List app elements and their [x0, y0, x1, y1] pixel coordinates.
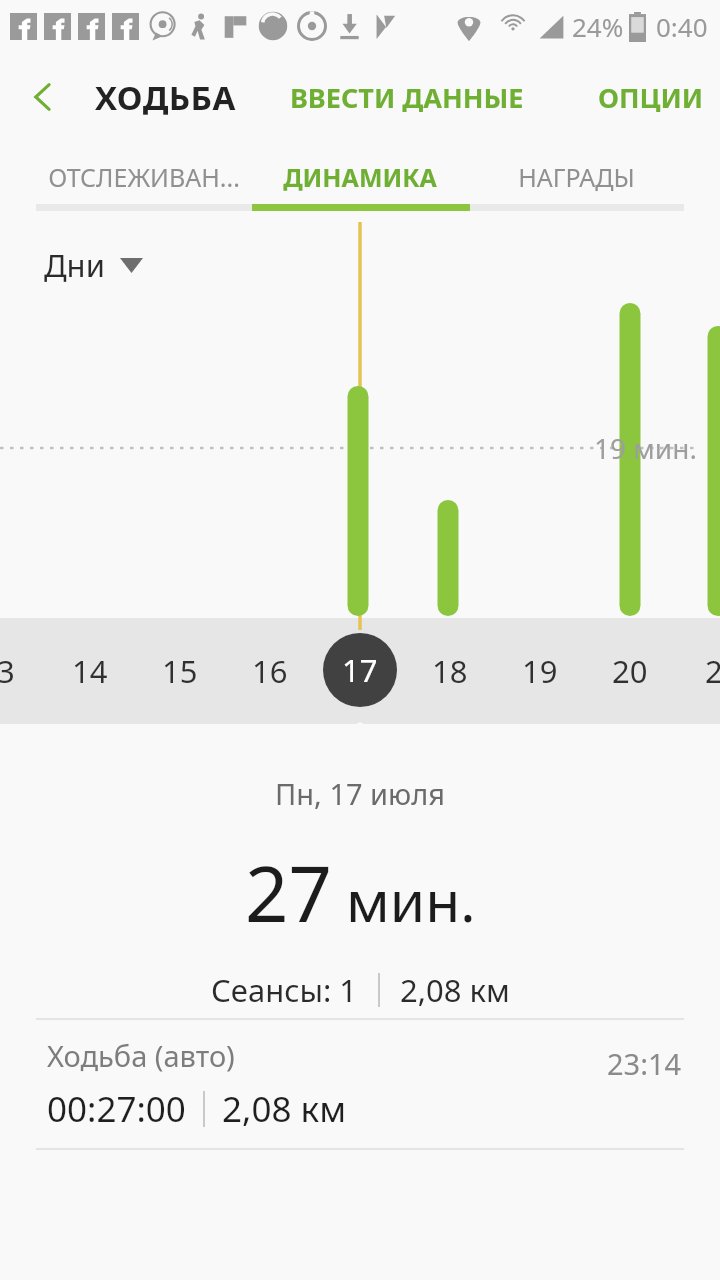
staticText: 23:14	[607, 1044, 682, 1083]
staticText: 27	[245, 841, 332, 945]
staticText: ОТСЛЕЖИВАН...	[48, 160, 240, 194]
staticText: 19 мин.	[594, 429, 697, 467]
button[interactable]: ДИНАМИКА	[252, 142, 468, 212]
button[interactable]: 16	[225, 626, 315, 716]
button[interactable]: 15	[135, 626, 225, 716]
staticText: ОПЦИИ	[598, 79, 704, 116]
button[interactable]: Back	[16, 70, 70, 124]
staticText: Пн, 17 июля	[275, 774, 446, 813]
staticText: Ходьба (авто)	[47, 1036, 235, 1075]
button[interactable]: 14	[45, 626, 135, 716]
staticText: 0:40	[656, 9, 708, 44]
staticText: Дни	[44, 244, 105, 286]
staticText: 20	[612, 650, 648, 692]
staticText: ХОДЬБА	[95, 75, 236, 120]
button[interactable]: Ходьба (авто)	[0, 1020, 720, 1148]
button[interactable]: 19	[495, 626, 585, 716]
staticText: НАГРАДЫ	[518, 160, 635, 194]
button[interactable]: 20	[585, 626, 675, 716]
staticText: мин.	[346, 861, 476, 939]
staticText: 19	[522, 650, 558, 692]
staticText: 2	[705, 650, 720, 692]
button[interactable]: ОПЦИИ	[592, 67, 710, 128]
staticText: 15	[162, 650, 198, 692]
staticText: ДИНАМИКА	[283, 160, 437, 194]
button[interactable]: 3	[0, 626, 51, 716]
staticText: 17	[342, 649, 378, 691]
staticText: 3	[0, 650, 15, 692]
button[interactable]: 18	[405, 626, 495, 716]
button[interactable]: ОТСЛЕЖИВАН...	[36, 142, 252, 212]
staticText: 16	[252, 650, 288, 692]
button[interactable]: 17	[323, 633, 397, 707]
button[interactable]: НАГРАДЫ	[468, 142, 684, 212]
staticText: 14	[72, 650, 108, 692]
button[interactable]: Дни	[44, 244, 143, 286]
staticText: 2,08 км	[400, 969, 510, 1011]
staticText: 2,08 км	[222, 1085, 347, 1133]
staticText: 24%	[572, 9, 624, 44]
staticText: 18	[432, 650, 468, 692]
button[interactable]: 2	[669, 626, 720, 716]
button[interactable]: ВВЕСТИ ДАННЫЕ	[284, 67, 530, 128]
staticText: ВВЕСТИ ДАННЫЕ	[290, 79, 524, 116]
staticText: 00:27:00	[47, 1085, 186, 1133]
staticText: Сеансы: 1	[211, 969, 358, 1011]
